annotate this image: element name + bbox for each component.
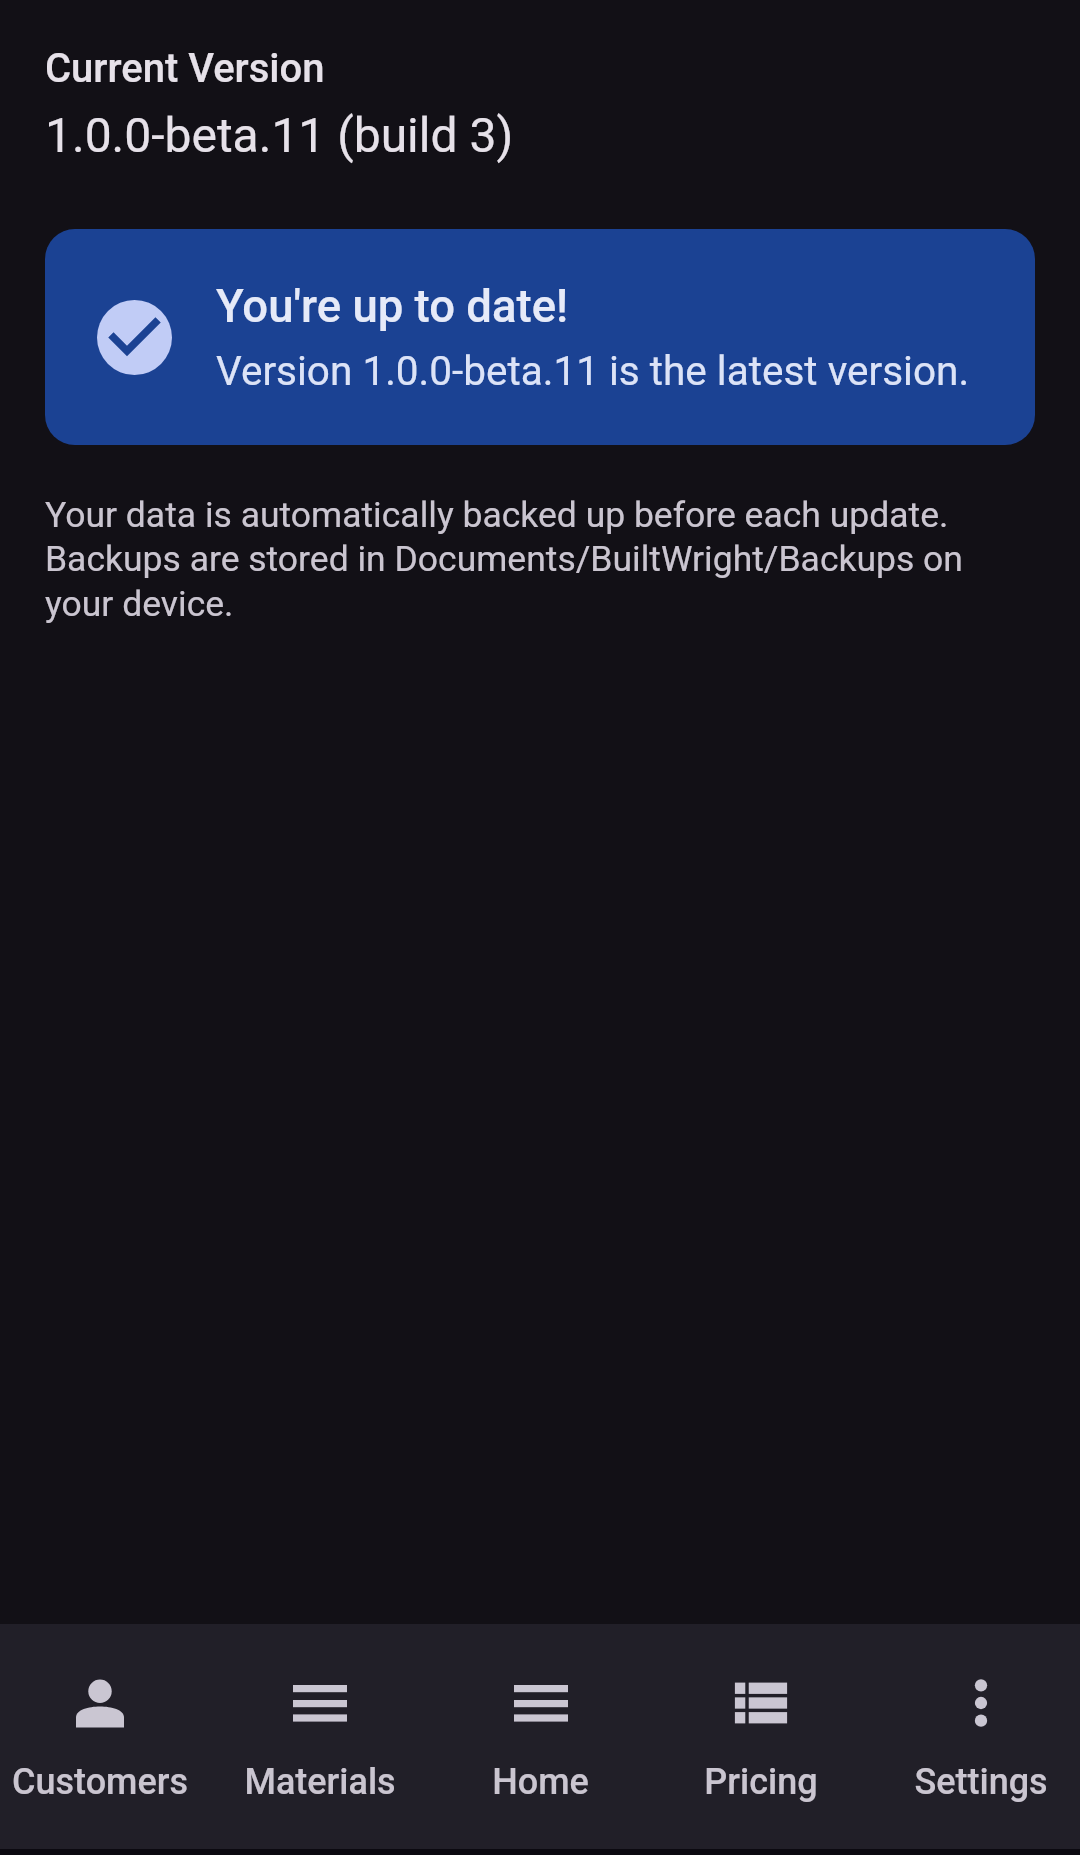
button[interactable]: You're up to date! [45,229,1035,445]
staticText: Customers [12,1761,188,1803]
staticText: Version 1.0.0-beta.11 is the latest vers… [216,347,970,394]
staticText: Current Version [45,45,325,92]
button[interactable]: Home [441,1624,640,1849]
staticText: Materials [244,1761,396,1803]
staticText: 1.0.0-beta.11 (build 3) [45,107,514,163]
button[interactable]: Settings [881,1624,1080,1849]
staticText: Pricing [704,1761,818,1803]
staticText: Settings [914,1761,1048,1803]
button[interactable]: Pricing [661,1624,860,1849]
staticText: Home [492,1761,589,1803]
staticText: You're up to date! [216,280,569,333]
button[interactable]: Customers [0,1624,199,1849]
staticText: Your data is automatically backed up bef… [45,494,1035,625]
button[interactable]: Materials [220,1624,419,1849]
